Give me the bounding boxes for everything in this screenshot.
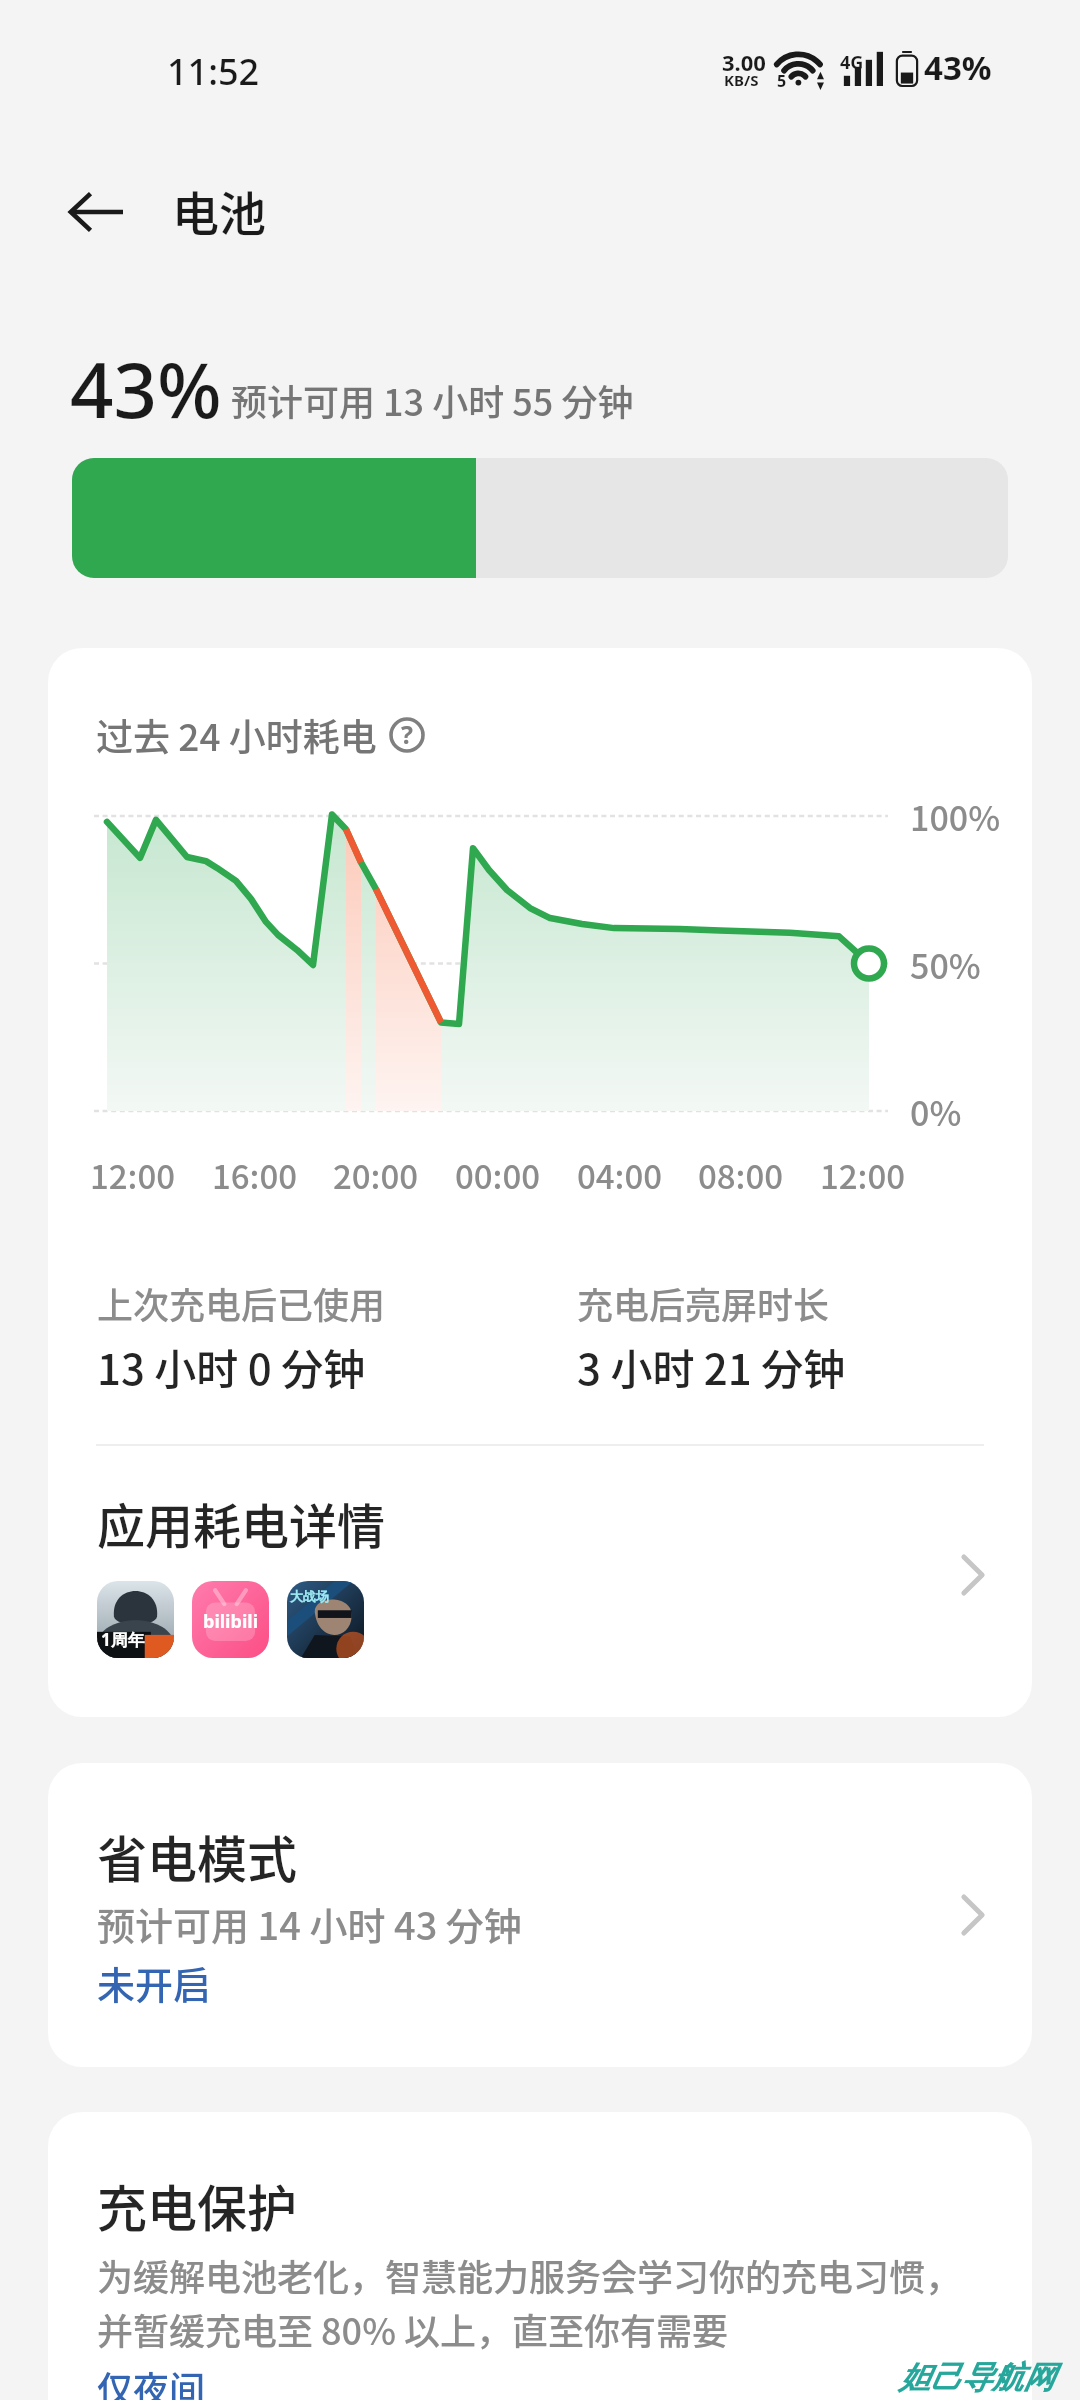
staticText: 并暂缓充电至 80% 以上，直至你有需要 (97, 2303, 729, 2355)
staticText: 未开启 (97, 1955, 212, 2010)
staticText: 43% (70, 337, 222, 441)
staticText: 预计可用 14 小时 43 分钟 (97, 1896, 522, 1951)
staticText: 电池 (172, 176, 266, 244)
staticText: 100% (910, 792, 1001, 841)
staticText: 43% (924, 45, 992, 90)
staticText: 13 小时 0 分钟 (97, 1336, 366, 1397)
staticText: 大战场 (290, 1588, 329, 1604)
staticText: 3 小时 21 分钟 (577, 1336, 846, 1397)
staticText: 16:00 (212, 1151, 298, 1199)
staticText: 仅夜间 (97, 2361, 206, 2400)
button[interactable]: Back (52, 170, 136, 254)
staticText: 5 (777, 70, 787, 92)
staticText: 省电模式 (97, 1820, 297, 1892)
staticText: ? (401, 717, 413, 751)
button[interactable]: 应用耗电详情 (48, 1470, 1032, 1692)
staticText: 08:00 (698, 1151, 784, 1199)
staticText: 04:00 (577, 1151, 663, 1199)
button[interactable]: 充电保护 (48, 2112, 1032, 2400)
staticText: 充电保护 (97, 2169, 297, 2241)
staticText: 11:52 (167, 47, 260, 96)
button[interactable]: 省电模式 (48, 1763, 1032, 2067)
staticText: 20:00 (333, 1151, 419, 1199)
staticText: 应用耗电详情 (97, 1488, 386, 1558)
staticText: 过去 24 小时耗电 (96, 708, 377, 762)
staticText: 12:00 (90, 1151, 176, 1199)
staticText: 上次充电后已使用 (97, 1277, 386, 1329)
staticText: 3.00 (722, 47, 766, 77)
staticText: 充电后亮屏时长 (577, 1277, 830, 1329)
staticText: 1周年 (101, 1628, 145, 1651)
staticText: KB/S (724, 70, 759, 90)
staticText: 妲己导航网 (899, 2358, 1054, 2397)
staticText: 50% (910, 940, 981, 989)
staticText: 4G (840, 50, 864, 75)
staticText: 00:00 (455, 1151, 541, 1199)
staticText: bilibili (203, 1609, 259, 1634)
staticText: 为缓解电池老化，智慧能力服务会学习你的充电习惯， (97, 2249, 962, 2301)
staticText: 预计可用 13 小时 55 分钟 (231, 374, 634, 426)
staticText: 0% (910, 1087, 962, 1136)
staticText: 12:00 (820, 1151, 906, 1199)
